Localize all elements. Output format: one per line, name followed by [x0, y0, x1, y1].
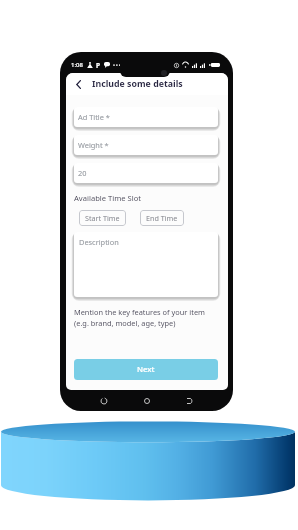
button[interactable]: Back	[184, 396, 194, 406]
button[interactable]: 20	[74, 163, 218, 183]
staticText: Mention the key features of your item (e…	[74, 307, 205, 328]
button[interactable]: Weight *	[74, 135, 218, 155]
button[interactable]: Recents	[99, 396, 109, 406]
button[interactable]: Back	[71, 77, 85, 91]
staticText: Next	[137, 364, 155, 375]
staticText: End Time	[146, 213, 178, 223]
staticText: Start Time	[85, 213, 120, 223]
staticText: Description	[79, 237, 119, 247]
staticText: Available Time Slot	[74, 193, 142, 203]
staticText: 1:08	[71, 61, 83, 69]
button[interactable]: Ad Title *	[74, 107, 218, 127]
staticText: Ad Title *	[78, 112, 110, 122]
button[interactable]: End Time	[140, 210, 184, 226]
staticText: P	[96, 61, 101, 70]
staticText: Weight *	[78, 140, 109, 150]
button[interactable]: Description	[74, 232, 218, 297]
button[interactable]: Start Time	[79, 210, 126, 226]
staticText: 20	[78, 168, 87, 178]
button[interactable]: Next	[74, 359, 218, 380]
button[interactable]: Home	[142, 396, 152, 406]
staticText: Include some details	[92, 78, 183, 90]
